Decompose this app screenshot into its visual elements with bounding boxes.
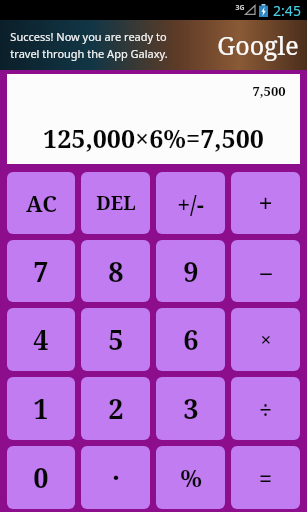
staticText: ÷ xyxy=(259,393,272,424)
button[interactable]: 9 xyxy=(156,240,225,302)
staticText: 7,500 xyxy=(252,82,286,100)
button[interactable]: 8 xyxy=(81,240,150,302)
button[interactable]: 0 xyxy=(7,446,75,509)
button[interactable]: 6 xyxy=(156,308,225,371)
button[interactable]: + xyxy=(231,172,300,234)
staticText: 9 xyxy=(183,253,199,290)
staticText: 5 xyxy=(108,321,124,358)
button[interactable]: +/- xyxy=(156,172,225,234)
staticText: DEL xyxy=(96,190,136,216)
button[interactable]: · xyxy=(81,446,150,509)
staticText: AC xyxy=(26,188,57,218)
button[interactable]: = xyxy=(231,446,300,509)
staticText: Success! Now you are ready to xyxy=(10,29,167,44)
staticText: 3 xyxy=(183,390,199,427)
button[interactable]: Success! Now you are ready to xyxy=(0,20,307,70)
button[interactable]: % xyxy=(156,446,225,509)
staticText: 1 xyxy=(33,390,49,427)
staticText: 0 xyxy=(33,459,49,496)
staticText: 3G xyxy=(235,3,245,13)
staticText: 2:45 xyxy=(273,1,301,20)
staticText: – xyxy=(260,256,272,287)
button[interactable]: 4 xyxy=(7,308,75,371)
button[interactable]: 5 xyxy=(81,308,150,371)
staticText: × xyxy=(260,326,272,353)
staticText: travel through the App Galaxy. xyxy=(10,46,168,61)
staticText: 2 xyxy=(108,390,124,427)
button[interactable]: – xyxy=(231,240,300,302)
staticText: + xyxy=(258,186,273,220)
staticText: · xyxy=(112,459,120,496)
staticText: +/- xyxy=(177,188,204,219)
staticText: 125,000×6%=7,500 xyxy=(43,121,264,155)
staticText: 4 xyxy=(33,321,49,358)
button[interactable]: × xyxy=(231,308,300,371)
button[interactable]: 2 xyxy=(81,377,150,440)
button[interactable]: ÷ xyxy=(231,377,300,440)
staticText: 7 xyxy=(33,253,49,290)
staticText: = xyxy=(259,462,272,493)
button[interactable]: AC xyxy=(7,172,75,234)
staticText: 6 xyxy=(183,321,199,358)
staticText: 8 xyxy=(108,253,124,290)
staticText: % xyxy=(180,461,202,494)
button[interactable]: 1 xyxy=(7,377,75,440)
button[interactable]: 7 xyxy=(7,240,75,302)
button[interactable]: 3 xyxy=(156,377,225,440)
button[interactable]: DEL xyxy=(81,172,150,234)
staticText: Google xyxy=(217,28,299,62)
